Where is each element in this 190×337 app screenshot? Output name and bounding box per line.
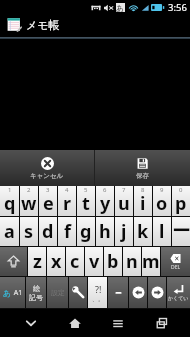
staticText: y [100,191,111,216]
staticText: キャンセル [30,172,64,180]
staticText: 2 [27,186,31,194]
staticText: o [156,191,168,216]
staticText: q [4,191,16,216]
staticText: f [64,219,71,244]
button[interactable]: ー [172,217,190,246]
button[interactable]: 2 [20,186,38,216]
button[interactable]: Home [53,309,96,337]
staticText: 8 [141,186,145,194]
staticText: r [63,191,72,216]
staticText: i [140,191,146,216]
button[interactable]: l [153,217,171,246]
staticText: d [42,219,54,244]
button[interactable]: f [58,217,76,246]
button[interactable]: Right [148,277,166,308]
button[interactable]: 7 [115,186,133,216]
button[interactable]: 設定 [47,277,68,308]
button[interactable]: k [134,217,152,246]
staticText: 6 [103,186,107,194]
button[interactable]: 3 [39,186,57,216]
staticText: m [142,249,160,274]
staticText: 、。 [92,295,104,303]
button[interactable]: 5 [77,186,95,216]
button[interactable]: Menu [96,309,140,337]
staticText: 保存 [136,172,149,180]
staticText: 3 [46,186,50,194]
button[interactable]: x [47,247,65,276]
button[interactable]: Settings [69,277,87,308]
staticText: あ [116,3,125,12]
button[interactable]: m [142,247,160,276]
button[interactable]: ?! [88,277,107,308]
staticText: s [24,219,34,244]
button[interactable]: g [77,217,95,246]
button[interactable]: Space [108,277,128,308]
staticText: k [137,219,149,244]
button[interactable]: c [66,247,84,276]
button[interactable]: Left [129,277,147,308]
button[interactable]: d [39,217,57,246]
staticText: v [89,249,100,274]
button[interactable]: 0 [172,186,190,216]
staticText: メモ帳 [26,18,60,32]
button[interactable]: Recents [140,309,184,337]
staticText: 絵 [33,284,40,293]
button[interactable]: 保存 [95,150,190,186]
button[interactable]: Shift [0,247,27,276]
button[interactable]: j [115,217,133,246]
staticText: p [175,191,187,216]
button[interactable]: 6 [96,186,114,216]
staticText: g [80,219,92,244]
staticText: A1 [12,288,23,298]
button[interactable]: DEL [161,247,190,276]
button[interactable]: b [104,247,122,276]
staticText: 3:56 [168,1,187,14]
staticText: h [99,219,111,244]
button[interactable]: s [20,217,38,246]
staticText: 4 [65,186,69,194]
staticText: 5 [84,186,88,194]
staticText: x [51,249,62,274]
staticText: DEL [171,264,181,271]
staticText: c [70,249,80,274]
button[interactable]: 絵 [26,277,46,308]
staticText: l [159,219,165,244]
staticText: 7 [122,186,126,194]
button[interactable]: かくてい [167,277,190,308]
staticText: j [121,219,127,244]
staticText: 設定 [51,288,65,297]
staticText: e [43,191,54,216]
staticText: u [118,191,130,216]
staticText: あ [3,288,12,298]
button[interactable]: キャンセル [0,150,94,186]
button[interactable]: 9 [153,186,171,216]
staticText: 0 [179,186,183,194]
button[interactable]: あ [0,277,25,308]
button[interactable]: v [85,247,103,276]
button[interactable]: a [0,217,19,246]
staticText: ー [172,220,190,243]
staticText: a [4,219,15,244]
staticText: 記号 [29,293,43,302]
staticText: 1 [8,186,12,194]
staticText: w [21,191,37,216]
staticText: 9 [160,186,164,194]
button[interactable]: h [96,217,114,246]
staticText: b [107,249,119,274]
staticText: z [33,249,42,274]
button[interactable]: z [28,247,46,276]
staticText: かくてい [168,295,189,301]
staticText: ?! [95,283,102,295]
button[interactable]: 1 [0,186,19,216]
button[interactable]: 4 [58,186,76,216]
staticText: n [126,249,138,274]
button[interactable]: Hide keyboard [8,309,53,337]
button[interactable]: n [123,247,141,276]
staticText: t [82,191,90,216]
button[interactable]: 8 [134,186,152,216]
